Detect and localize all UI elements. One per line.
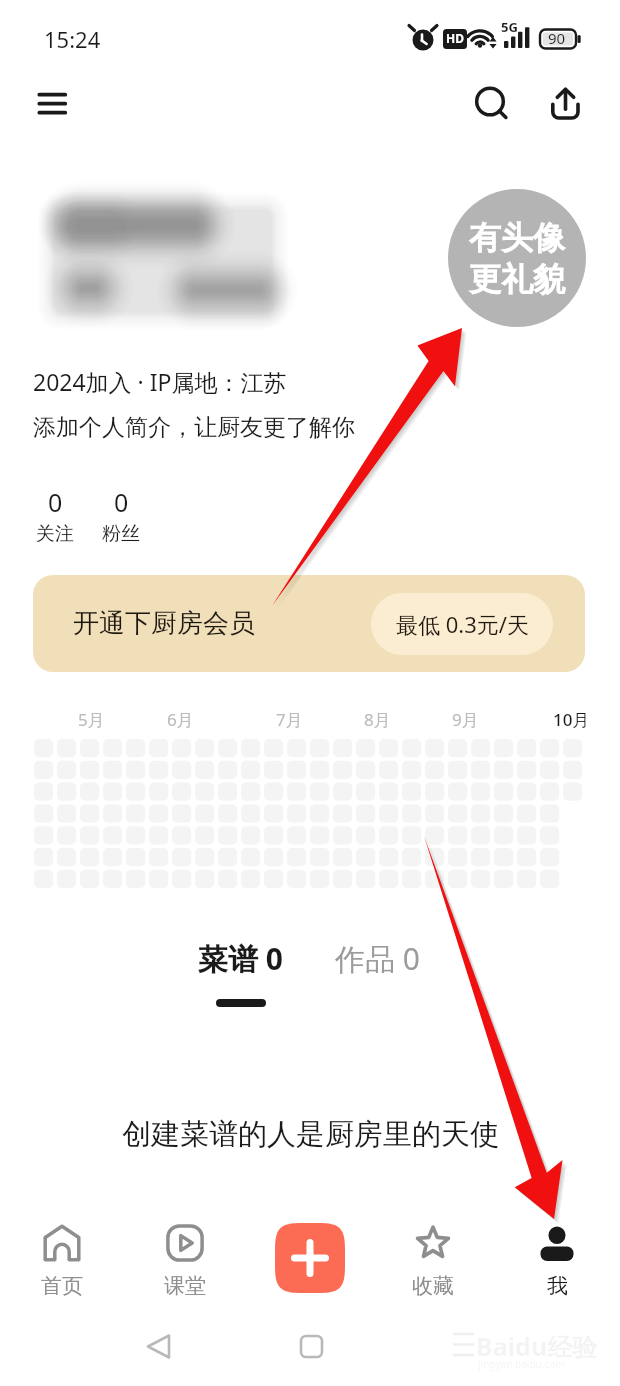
staticText: 关注 [36,522,74,546]
staticText: 课堂 [164,1273,206,1299]
staticText: 15:24 [44,24,101,54]
staticText: 收藏 [412,1273,454,1299]
staticText: 8月 [364,708,391,731]
staticText: 5月 [78,708,105,731]
button[interactable]: 首页 [17,1214,107,1304]
staticText: 更礼貌 [469,259,565,299]
staticText: 9月 [452,708,479,731]
staticText: 我 [547,1273,568,1299]
button[interactable]: 开通下厨房会员 [33,575,585,672]
staticText: HD [446,30,464,46]
button[interactable]: Search [462,74,518,130]
staticText: 2024加入 · IP属地：江苏 [33,366,287,397]
staticText: jingyan.baidu.com [478,1357,565,1371]
staticText: 粉丝 [102,522,140,546]
button[interactable]: Create [275,1223,345,1293]
button[interactable]: 我 [512,1214,602,1304]
staticText: 7月 [276,708,303,731]
staticText: 有头像 [469,218,565,258]
button[interactable]: 0 [98,485,144,546]
staticText: 5G [501,18,518,36]
button[interactable]: Share [538,74,594,130]
staticText: 首页 [41,1273,83,1299]
staticText: 创建菜谱的人是厨房里的天使 [122,1116,499,1153]
button[interactable]: Menu [22,76,78,132]
staticText: 最低 0.3元/天 [396,609,529,639]
staticText: 0 [114,485,129,519]
staticText: 开通下厨房会员 [73,607,255,640]
button[interactable]: 菜谱 0 [198,938,283,1007]
staticText: 作品 0 [335,938,420,979]
staticText: 90 [548,28,566,48]
staticText: 添加个人简介，让厨友更了解你 [33,413,355,442]
staticText: 6月 [167,708,194,731]
staticText: 0 [48,485,63,519]
staticText: 10月 [553,708,590,731]
staticText: Baidu经验 [476,1329,598,1363]
button[interactable]: Avatar [448,189,586,327]
button[interactable]: 作品 0 [335,938,420,979]
staticText: 菜谱 0 [198,938,283,979]
button[interactable]: 收藏 [388,1214,478,1304]
button[interactable]: 课堂 [140,1214,230,1304]
button[interactable]: 0 [32,485,78,546]
